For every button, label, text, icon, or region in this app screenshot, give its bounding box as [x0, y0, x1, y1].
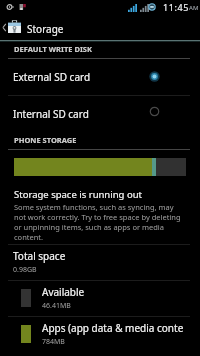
staticText: DEFAULT WRITE DISK: [14, 44, 92, 54]
staticText: 0.98GB: [13, 265, 37, 275]
staticText: Storage: [27, 22, 64, 36]
button[interactable]: External SD card: [0, 58, 200, 95]
staticText: AM: [189, 4, 199, 12]
staticText: 11:45: [163, 1, 190, 13]
staticText: 784MB: [42, 337, 65, 347]
button[interactable]: Internal SD card: [0, 95, 200, 132]
staticText: 46.41MB: [42, 301, 71, 311]
staticText: Storage space is running out: [14, 188, 142, 201]
button[interactable]: Available: [0, 280, 200, 316]
staticText: PHONE STORAGE: [14, 135, 77, 145]
staticText: External SD card: [13, 70, 91, 84]
staticText: Internal SD card: [13, 107, 89, 121]
staticText: Some system functions, such as syncing, …: [14, 202, 186, 242]
button[interactable]: Apps (app data & media content): [0, 316, 200, 352]
staticText: Apps (app data & media content): [42, 321, 183, 335]
staticText: Available: [42, 285, 85, 299]
button[interactable]: Total space: [0, 244, 200, 280]
button[interactable]: Navigate up: [0, 14, 200, 40]
staticText: Total space: [13, 249, 66, 263]
